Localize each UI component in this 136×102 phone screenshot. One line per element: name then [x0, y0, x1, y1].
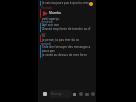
button[interactable]: Youtube: [38, 0, 55, 9]
staticText: samedi: [41, 42, 51, 46]
staticText: Mumba: [49, 11, 61, 15]
button[interactable]: Camera: [43, 92, 47, 96]
staticText: Ayé suis non: [42, 23, 60, 27]
staticText: petit aperçu: [42, 17, 59, 21]
staticText: peux pas: [42, 49, 55, 53]
button[interactable]: samedi: [38, 0, 87, 13]
button[interactable]: Stickers: [91, 92, 95, 96]
staticText: je serait au dessus de mes force: [42, 53, 87, 57]
button[interactable]: Microphone: [73, 93, 76, 96]
button[interactable]: Message: [49, 90, 72, 98]
staticText: Message: [51, 92, 62, 96]
staticText: je pense, ta pas trier du so: [42, 38, 80, 42]
button[interactable]: Gallery: [85, 93, 89, 96]
staticText: Je sais toujours pas à quoi tu ress: [42, 1, 89, 5]
staticText: Youtube: [41, 6, 53, 10]
button[interactable]: Voice message: [79, 92, 83, 96]
staticText: vendredi: [41, 20, 53, 24]
button[interactable]: Je sais toujours pas à quoi tu ress: [38, 0, 85, 4]
button[interactable]: vendredi: [38, 0, 87, 9]
staticText: Si: [42, 34, 45, 38]
staticText: Toile de n'envoyer des messages a: [42, 45, 91, 49]
staticText: hier: [41, 32, 47, 36]
staticText: Devrait trop fonte de tranche ou d': [42, 27, 91, 31]
button[interactable]: hier: [38, 0, 76, 7]
